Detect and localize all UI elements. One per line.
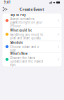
staticText: What's New bbox=[10, 52, 27, 55]
staticText: Everything you need to plan and share qu… bbox=[10, 33, 43, 40]
button[interactable]: Share bbox=[1, 6, 8, 13]
button[interactable]: What could be bbox=[2, 28, 61, 41]
staticText: Choose a date and a time bbox=[10, 45, 38, 52]
staticText: Tap to Pay bbox=[10, 13, 25, 17]
staticText: Create Event bbox=[19, 7, 44, 12]
button[interactable]: What's New bbox=[2, 52, 61, 66]
staticText: Discover the latest updates and the newe… bbox=[10, 56, 43, 67]
staticText: 9:41 bbox=[4, 1, 11, 4]
staticText: Schedule bbox=[10, 41, 23, 44]
staticText: Accept contactless payments right on you… bbox=[10, 17, 42, 28]
button[interactable]: Schedule bbox=[2, 41, 61, 52]
staticText: What could be bbox=[10, 29, 32, 32]
button[interactable]: Tap to Pay bbox=[2, 13, 61, 27]
